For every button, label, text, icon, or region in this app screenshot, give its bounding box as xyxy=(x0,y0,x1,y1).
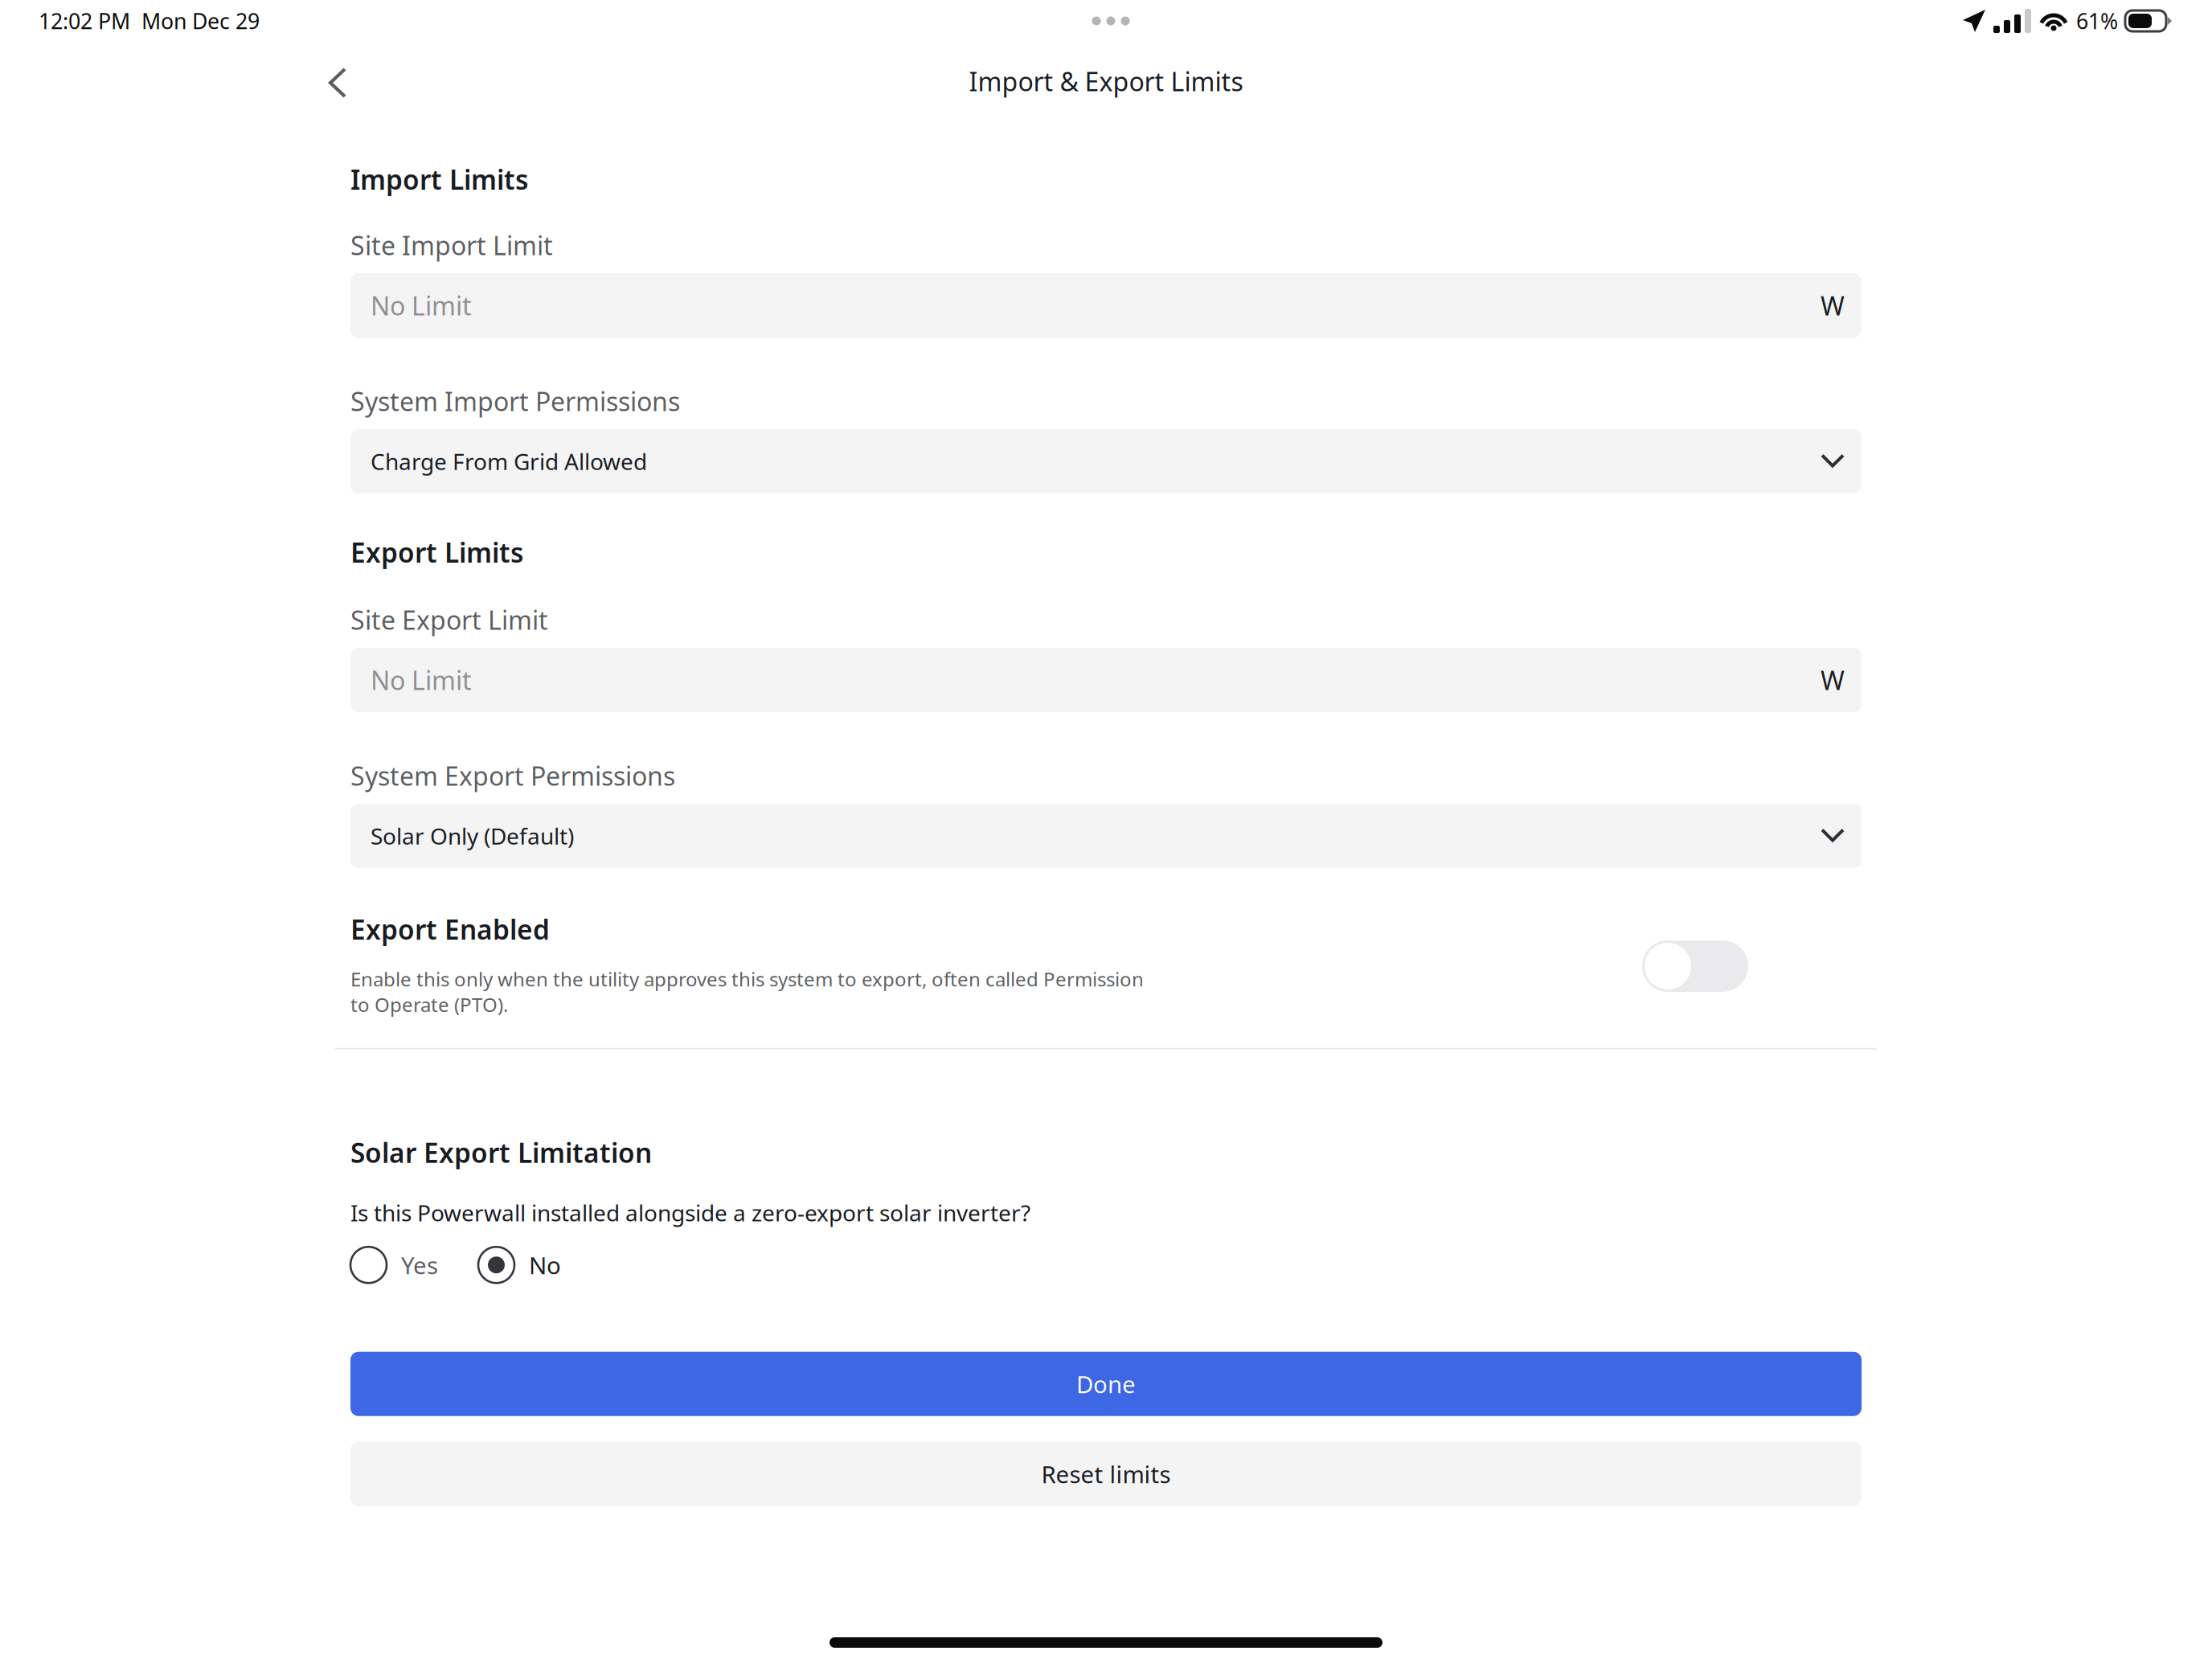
staticText: Export Limits xyxy=(350,534,523,570)
staticText: Import Limits xyxy=(350,161,528,197)
staticText: System Export Permissions xyxy=(350,759,675,793)
staticText: No Limit xyxy=(371,288,472,323)
staticText: W xyxy=(1821,288,1845,323)
staticText: Site Export Limit xyxy=(350,603,548,637)
button[interactable]: No Limit xyxy=(350,273,1862,338)
staticText: No Limit xyxy=(371,663,472,697)
staticText: Export Enabled xyxy=(350,911,550,947)
staticText: System Import Permissions xyxy=(350,384,680,418)
button[interactable]: No Limit xyxy=(350,648,1862,712)
staticText: Reset limits xyxy=(1041,1458,1171,1490)
staticText: Solar Export Limitation xyxy=(350,1135,652,1170)
button[interactable]: Done xyxy=(350,1352,1862,1416)
staticText: Is this Powerwall installed alongside a … xyxy=(350,1198,1030,1228)
staticText: Mon Dec 29 xyxy=(130,7,260,35)
button[interactable]: Export Enabled, off xyxy=(1642,940,1748,992)
staticText: Import & Export Limits xyxy=(969,64,1243,98)
staticText: 12:02 PM xyxy=(39,7,130,35)
button[interactable]: Back xyxy=(309,51,366,112)
staticText: Charge From Grid Allowed xyxy=(371,446,647,476)
staticText: Solar Only (Default) xyxy=(371,821,574,851)
button[interactable]: Charge From Grid Allowed xyxy=(350,429,1862,494)
staticText: W xyxy=(1821,663,1845,697)
staticText: Yes xyxy=(401,1249,438,1281)
staticText: Enable this only when the utility approv… xyxy=(350,966,1144,1017)
button[interactable]: Yes xyxy=(350,1246,438,1284)
button[interactable]: Reset limits xyxy=(350,1442,1862,1506)
staticText: No xyxy=(529,1249,561,1281)
button[interactable]: Solar Only (Default) xyxy=(350,804,1862,868)
staticText: Site Import Limit xyxy=(350,228,553,262)
button[interactable]: No xyxy=(478,1246,561,1284)
staticText: 61% xyxy=(2076,7,2118,35)
staticText: Done xyxy=(1076,1368,1136,1400)
